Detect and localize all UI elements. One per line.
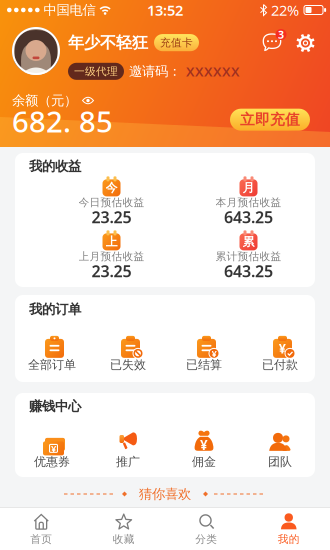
staticText: 643.25 — [224, 260, 273, 282]
staticText: 立即充值 — [240, 111, 300, 129]
button[interactable]: 立即充值 — [230, 109, 310, 131]
button[interactable]: 我的 — [247, 513, 330, 546]
staticText: 优惠券 — [34, 454, 70, 469]
staticText: 首页 — [30, 533, 52, 546]
button[interactable]: 设置 — [296, 33, 315, 52]
staticText: 22% — [271, 0, 299, 20]
staticText: 23.25 — [91, 260, 131, 282]
staticText: 收藏 — [113, 533, 135, 546]
button[interactable]: 今 — [43, 176, 180, 220]
staticText: 余额（元） — [12, 92, 77, 109]
staticText: 本月预估收益 — [215, 196, 281, 209]
button[interactable]: 上 — [43, 230, 180, 274]
button[interactable]: 已失效 — [90, 332, 166, 372]
staticText: 充值卡 — [160, 36, 193, 49]
staticText: 我的订单 — [29, 301, 81, 317]
button[interactable]: ¥ — [166, 429, 242, 469]
staticText: 分类 — [195, 533, 217, 546]
button[interactable]: 分类 — [165, 513, 247, 546]
staticText: ¥ — [200, 436, 208, 454]
staticText: 邀请码： — [129, 63, 181, 79]
staticText: 累 — [242, 234, 254, 249]
staticText: 23.25 — [91, 206, 131, 228]
staticText: ¥ — [211, 347, 216, 360]
staticText: 一级代理 — [74, 65, 118, 78]
staticText: 上 — [105, 234, 117, 249]
button[interactable]: ¥ — [14, 429, 90, 469]
staticText: 今 — [105, 180, 117, 195]
staticText: 13:52 — [147, 0, 183, 20]
staticText: 推广 — [116, 454, 140, 469]
staticText: 682. 85 — [12, 102, 113, 141]
button[interactable]: ¥ — [242, 332, 318, 372]
staticText: 中国电信 — [44, 2, 96, 18]
staticText: XXXXXX — [186, 62, 240, 80]
staticText: 全部订单 — [28, 357, 76, 372]
button[interactable]: 隐藏余额 — [82, 96, 94, 104]
button[interactable]: 月 — [180, 176, 317, 220]
staticText: 月 — [242, 180, 254, 195]
button[interactable]: 个人资料 — [12, 27, 60, 75]
staticText: 今日预估收益 — [78, 196, 144, 209]
staticText: 猜你喜欢 — [139, 486, 191, 502]
staticText: 佣金 — [192, 454, 216, 469]
button[interactable]: 全部订单 — [14, 332, 90, 372]
staticText: 我的 — [278, 533, 300, 546]
button[interactable]: 收藏 — [82, 513, 165, 546]
staticText: 643.25 — [224, 206, 273, 228]
staticText: 团队 — [268, 454, 292, 469]
button[interactable]: 消息 — [260, 32, 284, 52]
staticText: 年少不轻狂 — [68, 33, 148, 52]
staticText: 3 — [278, 27, 284, 42]
button[interactable]: 累 — [180, 230, 317, 274]
staticText: 累计预估收益 — [215, 250, 281, 263]
button[interactable]: 推广 — [90, 429, 166, 469]
staticText: 已付款 — [262, 357, 298, 372]
button[interactable]: 首页 — [0, 513, 82, 546]
button[interactable]: 团队 — [242, 429, 318, 469]
staticText: ¥ — [51, 442, 56, 455]
staticText: ¥ — [278, 339, 286, 357]
staticText: 已失效 — [110, 357, 146, 372]
button[interactable]: 充值卡 — [154, 34, 199, 51]
button[interactable]: ¥ — [166, 332, 242, 372]
staticText: 上月预估收益 — [78, 250, 144, 263]
staticText: 我的收益 — [29, 158, 81, 174]
staticText: 赚钱中心 — [29, 398, 81, 414]
staticText: 已结算 — [186, 357, 222, 372]
